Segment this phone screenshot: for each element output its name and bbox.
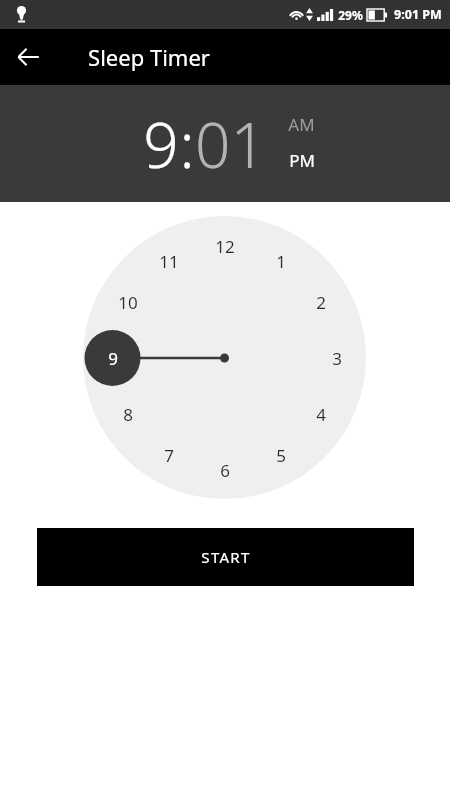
button[interactable]: 01 [195, 102, 266, 186]
staticText: 1 [276, 250, 286, 273]
staticText: START [201, 547, 251, 567]
staticText: 29% [338, 7, 363, 23]
staticText: 3 [332, 347, 342, 370]
staticText: Sleep Timer [88, 42, 210, 72]
staticText: 2 [316, 291, 326, 314]
staticText: : [179, 102, 195, 186]
button[interactable]: START [37, 528, 414, 586]
staticText: 01 [195, 102, 266, 186]
button[interactable]: PM [284, 146, 320, 175]
staticText: 9 [108, 347, 118, 370]
staticText: 9:01 PM [394, 6, 442, 23]
button[interactable]: Hour picker clock face [83, 216, 366, 499]
staticText: 11 [159, 250, 179, 273]
button[interactable]: Back [0, 29, 56, 85]
staticText: 6 [220, 459, 230, 482]
staticText: 8 [123, 403, 133, 426]
staticText: 12 [215, 235, 235, 258]
staticText: 10 [118, 291, 138, 314]
staticText: 9 [143, 102, 179, 186]
button[interactable]: AM [283, 110, 320, 139]
staticText: 5 [276, 444, 286, 467]
staticText: PM [289, 149, 315, 172]
staticText: AM [288, 113, 315, 136]
button[interactable]: 9 [143, 102, 179, 186]
staticText: 4 [316, 403, 326, 426]
staticText: 7 [164, 444, 174, 467]
